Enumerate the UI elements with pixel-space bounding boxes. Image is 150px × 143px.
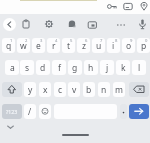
button[interactable] [62, 134, 89, 136]
button[interactable]: w [17, 38, 30, 53]
button[interactable]: b [83, 82, 95, 97]
staticText: v [72, 84, 77, 96]
staticText: 7 [100, 38, 103, 44]
staticText: e [36, 40, 41, 52]
button[interactable]: u [92, 38, 105, 53]
button[interactable] [3, 18, 16, 31]
staticText: 0 [145, 38, 148, 44]
staticText: j [106, 62, 109, 74]
button[interactable] [138, 1, 150, 12]
staticText: m [115, 84, 123, 96]
button[interactable] [137, 18, 148, 31]
button[interactable]: z [77, 38, 90, 53]
staticText: t [67, 40, 71, 52]
button[interactable] [120, 104, 127, 119]
staticText: b [86, 84, 92, 96]
button[interactable] [115, 20, 127, 30]
button[interactable]: o [122, 38, 135, 53]
staticText: l [138, 62, 141, 74]
button[interactable]: d [36, 60, 50, 75]
staticText: c [58, 84, 63, 96]
staticText: s [25, 62, 30, 74]
staticText: n [101, 84, 107, 96]
staticText: q [6, 40, 12, 52]
button[interactable]: j [100, 60, 114, 75]
button[interactable]: v [68, 82, 80, 97]
button[interactable] [129, 104, 149, 119]
staticText: g [72, 62, 78, 74]
staticText: 8 [115, 38, 118, 44]
button[interactable] [67, 19, 77, 29]
button[interactable]: h [84, 60, 98, 75]
button[interactable]: f [52, 60, 66, 75]
button[interactable]: r [47, 38, 60, 53]
button[interactable]: t [62, 38, 75, 53]
staticText: k [121, 62, 126, 74]
button[interactable]: k [116, 60, 130, 75]
button[interactable]: s [20, 60, 34, 75]
button[interactable]: y [24, 82, 36, 97]
staticText: y [28, 84, 33, 96]
button[interactable] [4, 122, 17, 132]
staticText: 3 [40, 38, 43, 44]
button[interactable]: p [137, 38, 150, 53]
staticText: 5 [70, 38, 73, 44]
button[interactable]: n [98, 82, 110, 97]
button[interactable] [87, 20, 98, 30]
staticText: w [20, 40, 27, 52]
staticText: z [82, 40, 86, 52]
staticText: x [43, 84, 48, 96]
button[interactable]: a [5, 60, 19, 75]
staticText: d [40, 62, 46, 74]
button[interactable]: q [2, 38, 15, 53]
staticText: 9 [130, 38, 133, 44]
staticText: 4 [55, 38, 58, 44]
button[interactable]: e [32, 38, 45, 53]
button[interactable] [2, 82, 22, 97]
staticText: 1 [10, 38, 13, 44]
button[interactable]: c [54, 82, 66, 97]
button[interactable] [44, 19, 54, 29]
staticText: 2 [25, 38, 28, 44]
button[interactable]: ?123 [2, 104, 22, 119]
button[interactable] [106, 1, 118, 12]
staticText: f [58, 62, 61, 74]
button[interactable]: x [39, 82, 51, 97]
staticText: u [96, 40, 102, 52]
staticText: i [112, 40, 115, 52]
button[interactable]: l [132, 60, 146, 75]
staticText: 6 [85, 38, 88, 44]
button[interactable] [122, 1, 134, 12]
staticText: ?123 [6, 108, 18, 115]
button[interactable] [129, 82, 149, 97]
button[interactable]: m [113, 82, 125, 97]
staticText: / [28, 106, 32, 118]
staticText: h [88, 62, 94, 74]
button[interactable] [21, 19, 31, 29]
staticText: o [126, 40, 132, 52]
staticText: r [52, 40, 56, 52]
button[interactable]: / [24, 104, 36, 119]
staticText: p [141, 40, 147, 52]
button[interactable]: i [107, 38, 120, 53]
button[interactable]: g [68, 60, 82, 75]
button[interactable] [39, 104, 51, 119]
staticText: a [10, 62, 15, 74]
